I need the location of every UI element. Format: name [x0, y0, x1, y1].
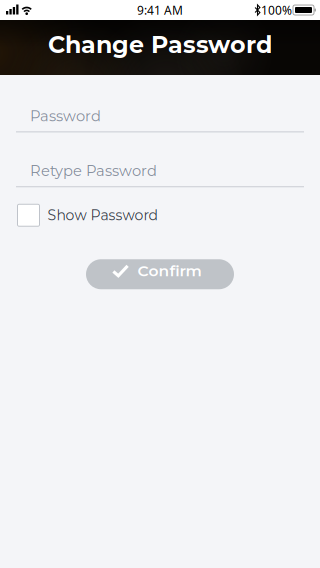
staticText: Retype Password — [30, 162, 157, 180]
button[interactable]: Show Password — [17, 204, 157, 227]
staticText: Show Password — [47, 207, 157, 224]
staticText: Change Password — [48, 30, 272, 59]
button[interactable]: Password — [16, 107, 304, 132]
staticText: 100% — [261, 2, 292, 18]
staticText: 9:41 AM — [137, 2, 183, 18]
button[interactable]: Retype Password — [16, 162, 304, 187]
staticText: Confirm — [137, 261, 201, 280]
staticText: Password — [30, 107, 101, 125]
button[interactable]: Confirm — [86, 259, 234, 289]
